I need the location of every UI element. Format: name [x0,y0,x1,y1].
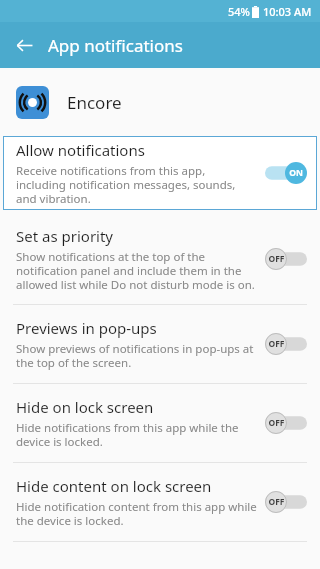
button[interactable]: Hide on lock screen [0,384,320,462]
staticText: 10:03 AM [263,4,312,19]
staticText: OFF [268,253,285,265]
staticText: Set as priority [16,226,114,246]
button[interactable]: Allow notifications toggle, on [265,162,307,184]
staticText: Hide on lock screen [16,397,154,417]
button[interactable]: Back [8,29,40,61]
staticText: Encore [67,91,122,114]
button[interactable]: Allow notifications [3,136,317,210]
staticText: OFF [268,417,285,429]
button[interactable]: Previews in pop-ups [0,305,320,383]
button[interactable]: Toggle, off [265,333,307,355]
staticText: Previews in pop-ups [16,318,157,338]
button[interactable]: Set as priority [0,214,320,304]
button[interactable]: Toggle, off [265,248,307,270]
button[interactable]: Encore [0,68,320,136]
staticText: Allow notifications [16,140,145,160]
staticText: Hide notifications from this app while t… [16,420,239,449]
staticText: Show notifications at the top of the not… [16,249,255,292]
staticText: OFF [268,496,285,508]
staticText: Show previews of notifications in pop-up… [16,341,254,370]
button[interactable]: Toggle, off [265,491,307,513]
staticText: Receive notifications from this app, inc… [16,163,236,206]
staticText: Hide content on lock screen [16,476,212,496]
staticText: ON [289,167,303,179]
staticText: App notifications [48,34,183,57]
staticText: OFF [268,338,285,350]
staticText: 54% [228,4,250,19]
staticText: Hide notification content from this app … [16,499,257,528]
button[interactable]: Toggle, off [265,412,307,434]
button[interactable]: Hide content on lock screen [0,463,320,541]
